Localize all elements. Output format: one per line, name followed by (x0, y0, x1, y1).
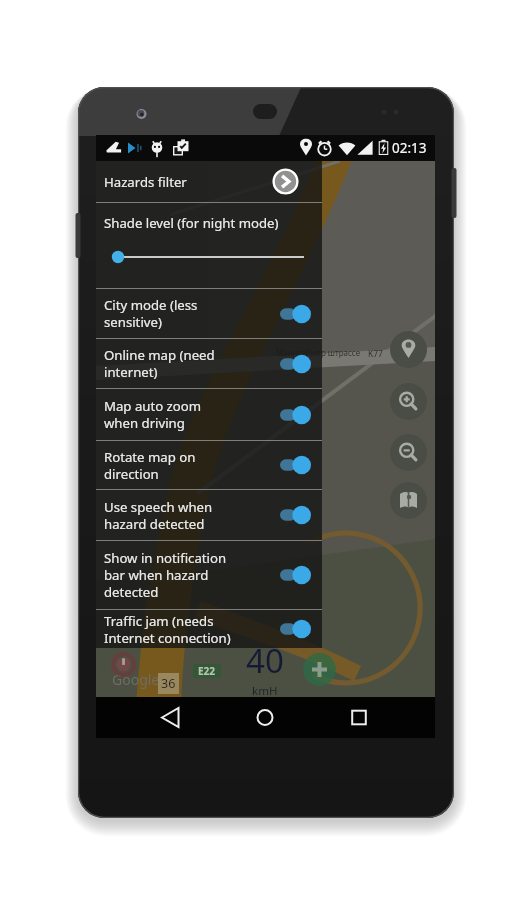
button[interactable]: Online map (need internet) (96, 339, 322, 388)
staticText: Hazards filter (104, 173, 187, 191)
button[interactable]: City mode (less sensitive) (96, 289, 322, 338)
staticText: 02:13 (392, 139, 427, 157)
button[interactable]: Toggle (280, 504, 311, 526)
staticText: kmH (252, 683, 278, 699)
staticText: Use speech when hazard detected (104, 498, 280, 533)
button[interactable]: Shade level (for night mode) (96, 203, 322, 288)
staticText: K77 (368, 348, 383, 360)
button[interactable]: Use speech when hazard detected (96, 490, 322, 540)
staticText: Shade level (for night mode) (104, 214, 279, 232)
button[interactable]: Map auto zoom when driving (96, 389, 322, 440)
button[interactable]: Add report (303, 653, 336, 686)
button[interactable]: Zoom in (390, 383, 427, 420)
staticText: 36 (161, 675, 176, 692)
button[interactable]: Hazards filter (96, 161, 322, 202)
staticText: E22 (198, 664, 216, 678)
button[interactable]: Back (123, 697, 218, 738)
button[interactable]: Open hazards filter (272, 168, 299, 195)
button[interactable]: Toggle (280, 404, 311, 426)
button[interactable]: Home (218, 697, 312, 738)
button[interactable]: Toggle (280, 353, 311, 375)
staticText: Traffic jam (needs Internet connection) (104, 612, 280, 647)
staticText: City mode (less sensitive) (104, 296, 280, 331)
staticText: 40 (246, 638, 284, 683)
button[interactable]: Rotate map on direction (96, 441, 322, 489)
button[interactable]: Power (111, 652, 136, 677)
staticText: Google (112, 670, 160, 689)
staticText: Online map (need internet) (104, 346, 280, 381)
staticText: Show in notification bar when hazard det… (104, 549, 280, 601)
staticText: Маннгеймер штрассе (276, 347, 361, 358)
button[interactable]: Center on my location (390, 331, 427, 368)
button[interactable]: Traffic jam (needs Internet connection) (96, 610, 322, 648)
button[interactable]: Toggle (280, 303, 311, 325)
button[interactable]: Toggle (280, 618, 311, 640)
button[interactable]: Show in notification bar when hazard det… (96, 541, 322, 609)
button[interactable]: Toggle (280, 564, 311, 586)
staticText: Rotate map on direction (104, 448, 280, 483)
button[interactable]: Toggle (280, 454, 311, 476)
button[interactable]: Zoom out (390, 434, 427, 471)
button[interactable]: Map layers (390, 482, 427, 519)
staticText: Map auto zoom when driving (104, 397, 280, 432)
button[interactable]: Recent apps (312, 697, 406, 738)
